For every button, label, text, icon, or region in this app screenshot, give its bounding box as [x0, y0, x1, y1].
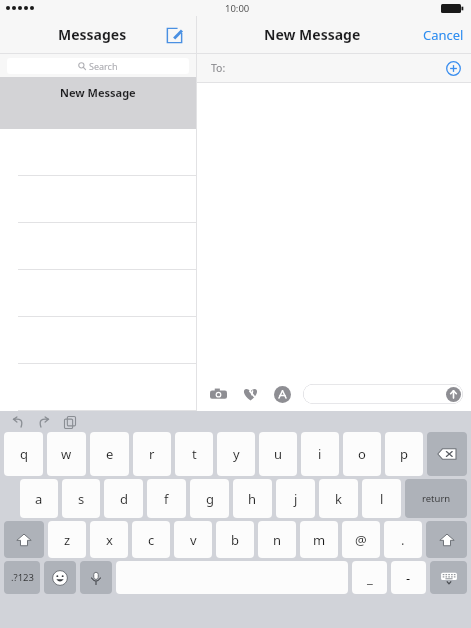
button[interactable]: d	[104, 479, 143, 518]
staticText: g	[206, 490, 214, 508]
staticText: r	[149, 445, 155, 463]
button[interactable]: c	[132, 521, 170, 558]
staticText: .?123	[11, 571, 34, 584]
button[interactable]: Digital Touch	[239, 383, 261, 405]
button[interactable]: v	[174, 521, 212, 558]
button[interactable]: z	[48, 521, 86, 558]
staticText: @	[355, 531, 367, 549]
button[interactable]: b	[216, 521, 254, 558]
staticText: z	[64, 531, 71, 549]
button[interactable]: .?123	[4, 561, 40, 594]
button[interactable]: Send	[303, 384, 463, 404]
staticText: _	[367, 569, 373, 587]
button[interactable]: Send	[445, 386, 461, 402]
staticText: Messages	[58, 25, 127, 44]
button[interactable]: Hide keyboard	[430, 561, 467, 594]
button[interactable]: a	[20, 479, 58, 518]
button[interactable]: return	[405, 479, 467, 518]
staticText: Search	[89, 60, 118, 72]
staticText: l	[380, 490, 384, 508]
button[interactable]: _	[352, 561, 387, 594]
staticText: s	[78, 490, 85, 508]
staticText: Cancel	[423, 26, 464, 44]
staticText: return	[422, 492, 451, 505]
staticText: o	[358, 445, 366, 463]
button[interactable]: App Store	[271, 383, 293, 405]
button[interactable]: Dictation	[80, 561, 112, 594]
button[interactable]: t	[175, 432, 213, 476]
button[interactable]: j	[276, 479, 315, 518]
button[interactable]: u	[259, 432, 297, 476]
button[interactable]: Emoji	[44, 561, 76, 594]
staticText: p	[400, 445, 408, 463]
button[interactable]	[0, 270, 196, 317]
button[interactable]: h	[233, 479, 272, 518]
button[interactable]: x	[90, 521, 128, 558]
button[interactable]: p	[385, 432, 423, 476]
staticText: n	[273, 531, 282, 549]
staticText: y	[233, 445, 240, 463]
button[interactable]: Shift	[4, 521, 44, 558]
staticText: 10:00	[225, 2, 250, 15]
staticText: h	[248, 490, 257, 508]
staticText: New Message	[60, 85, 136, 100]
button[interactable]: i	[301, 432, 339, 476]
button[interactable]: n	[258, 521, 296, 558]
button[interactable]: s	[62, 479, 100, 518]
button[interactable]: k	[319, 479, 358, 518]
button[interactable]: m	[300, 521, 338, 558]
button[interactable]: o	[343, 432, 381, 476]
button[interactable]: Compose new message	[161, 22, 187, 48]
staticText: k	[335, 490, 342, 508]
staticText: a	[35, 490, 43, 508]
button[interactable]: g	[190, 479, 229, 518]
staticText: x	[106, 531, 113, 549]
button[interactable]: Add contact	[444, 59, 462, 77]
staticText: New Message	[264, 25, 361, 44]
staticText: j	[294, 490, 298, 508]
staticText: e	[106, 445, 114, 463]
button[interactable]: To:	[197, 54, 471, 82]
button[interactable]	[0, 317, 196, 364]
button[interactable]: New Message	[0, 77, 196, 129]
button[interactable]: y	[217, 432, 255, 476]
button[interactable]: .	[384, 521, 422, 558]
button[interactable]: e	[90, 432, 129, 476]
button[interactable]: Redo	[34, 412, 54, 432]
button[interactable]: q	[4, 432, 43, 476]
button[interactable]: Undo	[8, 412, 28, 432]
staticText: v	[190, 531, 197, 549]
button[interactable]: -	[391, 561, 426, 594]
staticText: w	[61, 445, 72, 463]
staticText: u	[274, 445, 283, 463]
staticText: f	[164, 490, 169, 508]
button[interactable]: @	[342, 521, 380, 558]
staticText: .	[401, 531, 405, 549]
staticText: b	[231, 531, 239, 549]
staticText: -	[406, 569, 411, 587]
staticText: To:	[211, 61, 226, 75]
staticText: d	[120, 490, 128, 508]
button[interactable]	[0, 176, 196, 223]
staticText: c	[148, 531, 155, 549]
button[interactable]: Cancel	[423, 26, 464, 44]
button[interactable]: w	[47, 432, 86, 476]
button[interactable]	[0, 129, 196, 176]
button[interactable]: Shift	[426, 521, 467, 558]
button[interactable]: Camera	[207, 383, 229, 405]
button[interactable]: Backspace	[427, 432, 467, 476]
staticText: i	[318, 445, 322, 463]
staticText: m	[313, 531, 326, 549]
button[interactable]: Search	[7, 58, 189, 74]
button[interactable]: Paste	[60, 412, 80, 432]
button[interactable]	[0, 223, 196, 270]
button[interactable]	[0, 364, 196, 411]
button[interactable]: f	[147, 479, 186, 518]
staticText: t	[192, 445, 197, 463]
button[interactable]: l	[362, 479, 401, 518]
staticText: q	[20, 445, 28, 463]
button[interactable]: r	[133, 432, 171, 476]
